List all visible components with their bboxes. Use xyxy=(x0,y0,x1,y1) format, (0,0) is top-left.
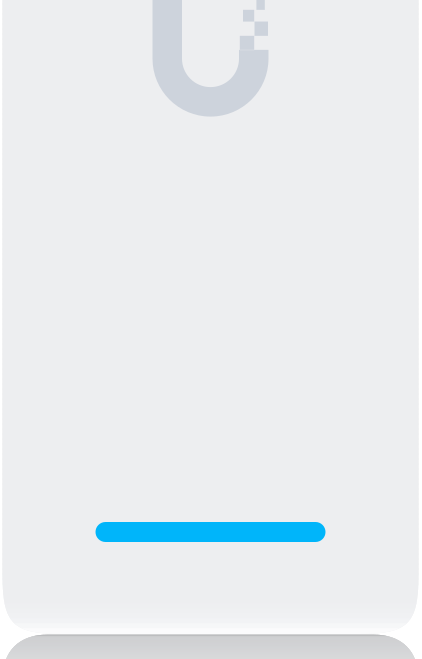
button[interactable]: Status xyxy=(95,522,325,542)
